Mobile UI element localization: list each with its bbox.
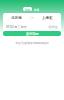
- staticText: 北京南: [11, 16, 22, 21]
- staticText: 查询车票: [26, 32, 39, 36]
- staticText: 学生: [52, 25, 58, 29]
- button[interactable]: 往返: [32, 7, 41, 11]
- button[interactable]: 查询车票: [3, 31, 61, 36]
- button[interactable]: 学生: [49, 25, 58, 29]
- other: Swap stations: [29, 16, 34, 21]
- button[interactable]: 学生/儿童/残军优惠购票须知: [0, 41, 64, 45]
- staticText: 单程: [25, 8, 31, 11]
- button[interactable]: 单程: [23, 7, 32, 11]
- staticText: 上海虹: [42, 16, 53, 21]
- button[interactable]: 北京南: [3, 13, 61, 23]
- staticText: 往返: [34, 8, 40, 11]
- button[interactable]: 07-02 周三 明天: [6, 25, 27, 29]
